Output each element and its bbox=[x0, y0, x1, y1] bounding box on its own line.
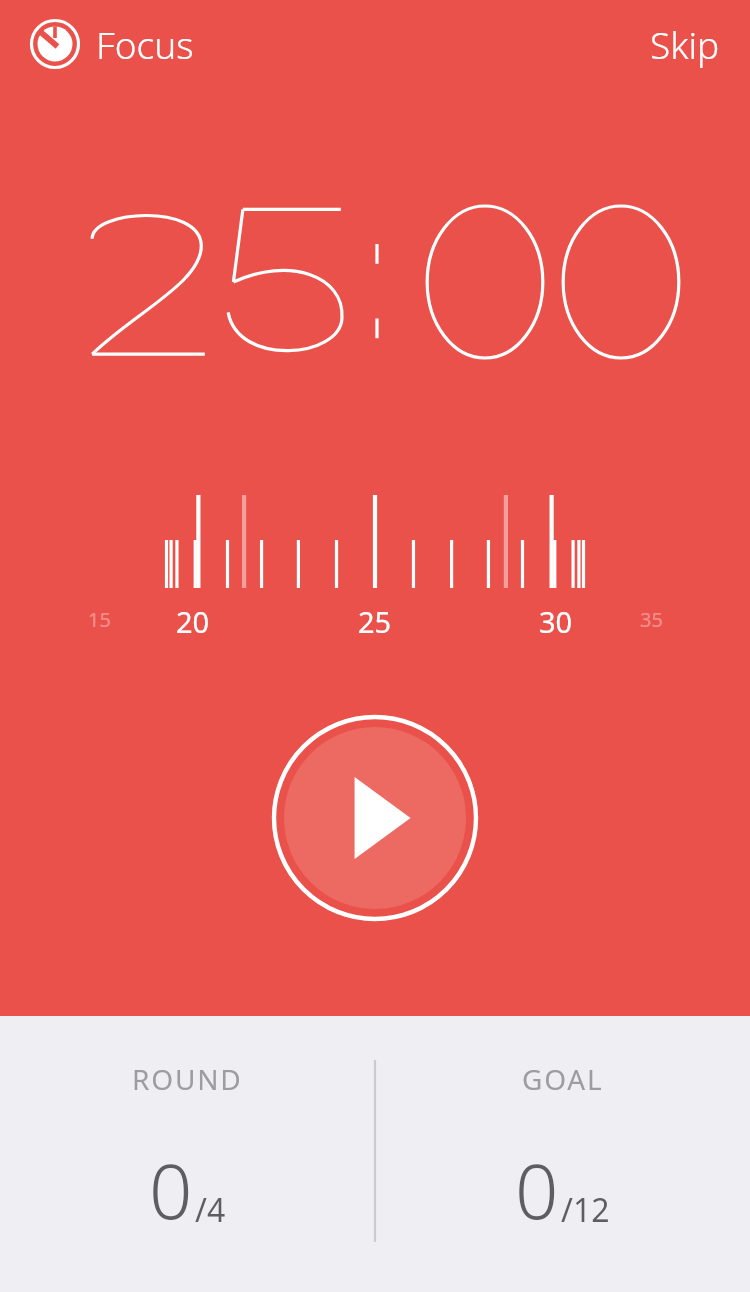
staticText: Focus bbox=[96, 19, 194, 69]
staticText: 30 bbox=[539, 602, 573, 641]
staticText: GOAL bbox=[522, 1060, 604, 1098]
staticText: /4 bbox=[195, 1188, 226, 1232]
staticText: 15 bbox=[88, 606, 111, 633]
other: Focus timer bbox=[30, 19, 80, 69]
button[interactable]: Focus timer bbox=[0, 9, 208, 79]
button[interactable]: Start bbox=[271, 714, 479, 922]
staticText: Skip bbox=[650, 19, 720, 69]
staticText: 0 bbox=[515, 1138, 559, 1242]
staticText: 35 bbox=[640, 606, 663, 633]
button[interactable]: GOAL bbox=[375, 1016, 750, 1242]
staticText: 25 bbox=[358, 602, 392, 641]
button[interactable]: ROUND bbox=[0, 1016, 375, 1242]
button[interactable]: Skip bbox=[620, 5, 750, 83]
staticText: ROUND bbox=[132, 1060, 243, 1098]
staticText: 20 bbox=[176, 602, 210, 641]
staticText: /12 bbox=[561, 1188, 610, 1232]
staticText: 0 bbox=[149, 1138, 193, 1242]
